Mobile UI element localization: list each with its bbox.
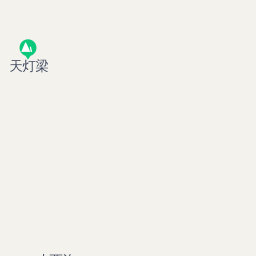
button[interactable]: 天灯梁	[10, 39, 50, 74]
button[interactable]: 小西沟	[36, 252, 75, 256]
staticText: 天灯梁	[10, 58, 49, 74]
staticText: 小西沟	[36, 252, 75, 256]
